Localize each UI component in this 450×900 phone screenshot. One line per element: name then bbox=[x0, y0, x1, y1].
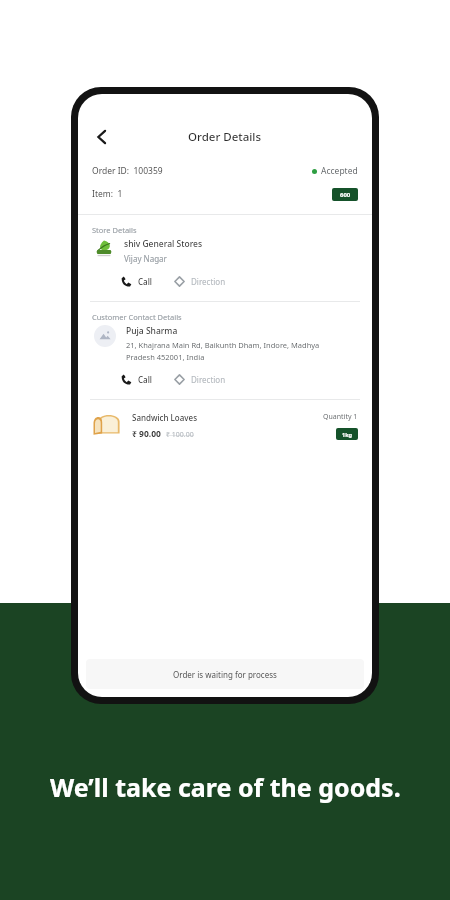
staticText: Item: 1 bbox=[92, 188, 123, 200]
staticText: Order is waiting for process bbox=[173, 669, 277, 680]
staticText: We’ll take care of the goods. bbox=[50, 770, 401, 804]
button[interactable]: Call bbox=[118, 372, 155, 387]
staticText: Pradesh 452001, India bbox=[126, 352, 205, 362]
staticText: ₹ 100.00 bbox=[166, 430, 194, 440]
staticText: Accepted bbox=[321, 165, 358, 177]
staticText: Quantity 1 bbox=[323, 412, 358, 422]
button[interactable]: Direction bbox=[171, 274, 229, 289]
staticText: Order Details bbox=[188, 129, 262, 145]
staticText: Call bbox=[138, 276, 152, 287]
button[interactable]: Direction bbox=[171, 372, 229, 387]
staticText: Sandwich Loaves bbox=[132, 412, 198, 423]
button[interactable]: 1kg bbox=[336, 428, 358, 440]
staticText: 1kg bbox=[342, 431, 353, 438]
button[interactable]: Order is waiting for process bbox=[86, 659, 364, 689]
staticText: Call bbox=[138, 374, 152, 385]
staticText: Direction bbox=[191, 276, 226, 287]
button[interactable]: Call bbox=[118, 274, 155, 289]
button[interactable]: Back bbox=[86, 121, 118, 153]
button[interactable]: 600 bbox=[332, 188, 358, 201]
staticText: Customer Contact Details bbox=[92, 312, 182, 322]
staticText: Direction bbox=[191, 374, 226, 385]
staticText: Order ID: 100359 bbox=[92, 165, 163, 177]
staticText: Puja Sharma bbox=[126, 325, 178, 337]
staticText: ₹ 90.00 bbox=[132, 428, 161, 440]
staticText: 21, Khajrana Main Rd, Baikunth Dham, Ind… bbox=[126, 340, 320, 350]
staticText: shiv General Stores bbox=[124, 238, 203, 250]
staticText: Store Details bbox=[92, 225, 137, 235]
staticText: Vijay Nagar bbox=[124, 253, 167, 264]
staticText: 600 bbox=[340, 191, 351, 199]
